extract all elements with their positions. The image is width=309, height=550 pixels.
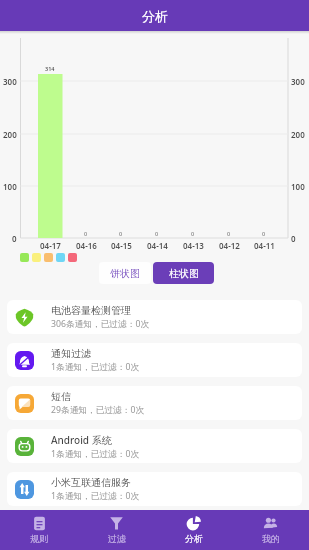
staticText: 0	[155, 230, 159, 237]
button[interactable]: 小米互联通信服务	[7, 472, 302, 506]
button[interactable]: 过滤	[78, 510, 155, 550]
staticText: 0	[262, 230, 266, 237]
staticText: 我的	[262, 533, 280, 544]
staticText: 200	[291, 129, 305, 140]
staticText: 0	[227, 230, 231, 237]
button[interactable]: 规则	[0, 510, 78, 550]
staticText: 分析	[185, 533, 203, 544]
button[interactable]: 短信	[7, 386, 302, 420]
staticText: 0	[191, 230, 195, 237]
staticText: 306条通知，已过滤：0次	[51, 318, 150, 330]
staticText: 1条通知，已过滤：0次	[51, 361, 140, 373]
staticText: 通知过滤	[51, 347, 91, 360]
button[interactable]: 我的	[232, 510, 309, 550]
staticText: 小米互联通信服务	[51, 476, 131, 489]
staticText: 0	[84, 230, 88, 237]
staticText: 0	[119, 230, 123, 237]
staticText: 314	[45, 65, 55, 72]
button[interactable]: 分析	[155, 510, 232, 550]
staticText: 04-12	[219, 240, 240, 251]
staticText: 短信	[51, 390, 71, 403]
staticText: Android 系统	[51, 433, 112, 447]
staticText: 规则	[30, 533, 48, 544]
button[interactable]: Android 系统	[7, 429, 302, 463]
button[interactable]: 柱状图	[153, 262, 214, 284]
staticText: 04-11	[254, 240, 275, 251]
button[interactable]: 电池容量检测管理	[7, 300, 302, 334]
staticText: 300	[291, 76, 305, 87]
staticText: 04-14	[147, 240, 168, 251]
staticText: 04-16	[76, 240, 97, 251]
staticText: 1条通知，已过滤：0次	[51, 490, 140, 502]
staticText: 100	[291, 181, 305, 192]
button[interactable]: 通知过滤	[7, 343, 302, 377]
staticText: 过滤	[108, 533, 126, 544]
staticText: 柱状图	[169, 267, 199, 280]
staticText: 100	[3, 181, 17, 192]
staticText: 分析	[142, 8, 168, 24]
staticText: 0	[12, 233, 17, 244]
staticText: 电池容量检测管理	[51, 304, 131, 317]
staticText: 0	[291, 233, 296, 244]
staticText: 300	[3, 76, 17, 87]
staticText: 1条通知，已过滤：0次	[51, 448, 140, 460]
staticText: 04-15	[111, 240, 132, 251]
staticText: 200	[3, 129, 17, 140]
button[interactable]: 饼状图	[99, 262, 151, 284]
staticText: 饼状图	[110, 267, 140, 280]
staticText: 04-17	[40, 240, 61, 251]
staticText: 04-13	[183, 240, 204, 251]
staticText: 29条通知，已过滤：0次	[51, 404, 145, 416]
